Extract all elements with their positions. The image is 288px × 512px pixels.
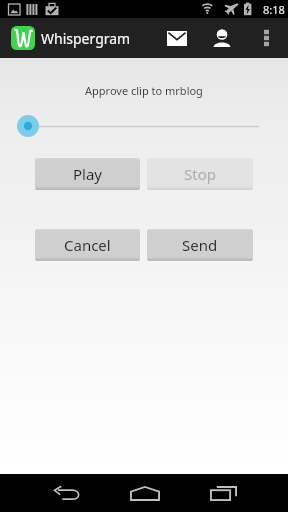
button[interactable]: Play (35, 158, 140, 190)
button[interactable]: Stop (147, 158, 253, 190)
staticText: Whispergram (41, 29, 131, 48)
staticText: Approve clip to mrblog (85, 83, 203, 98)
button[interactable]: Recent apps (184, 474, 262, 512)
staticText: Cancel (64, 235, 111, 255)
button[interactable]: Home (106, 474, 184, 512)
staticText: Send (182, 235, 218, 255)
staticText: Stop (184, 164, 216, 184)
button[interactable]: More options (245, 18, 287, 58)
button[interactable]: Messages (155, 18, 199, 58)
button[interactable]: Cancel (35, 229, 140, 261)
button[interactable]: Seek position (0, 110, 288, 142)
staticText: Play (73, 164, 103, 184)
button[interactable]: Whispergram (0, 18, 137, 58)
button[interactable]: Back (28, 474, 106, 512)
staticText: 8:18 (263, 2, 285, 17)
button[interactable]: Profile (199, 18, 245, 58)
button[interactable]: Send (147, 229, 253, 261)
